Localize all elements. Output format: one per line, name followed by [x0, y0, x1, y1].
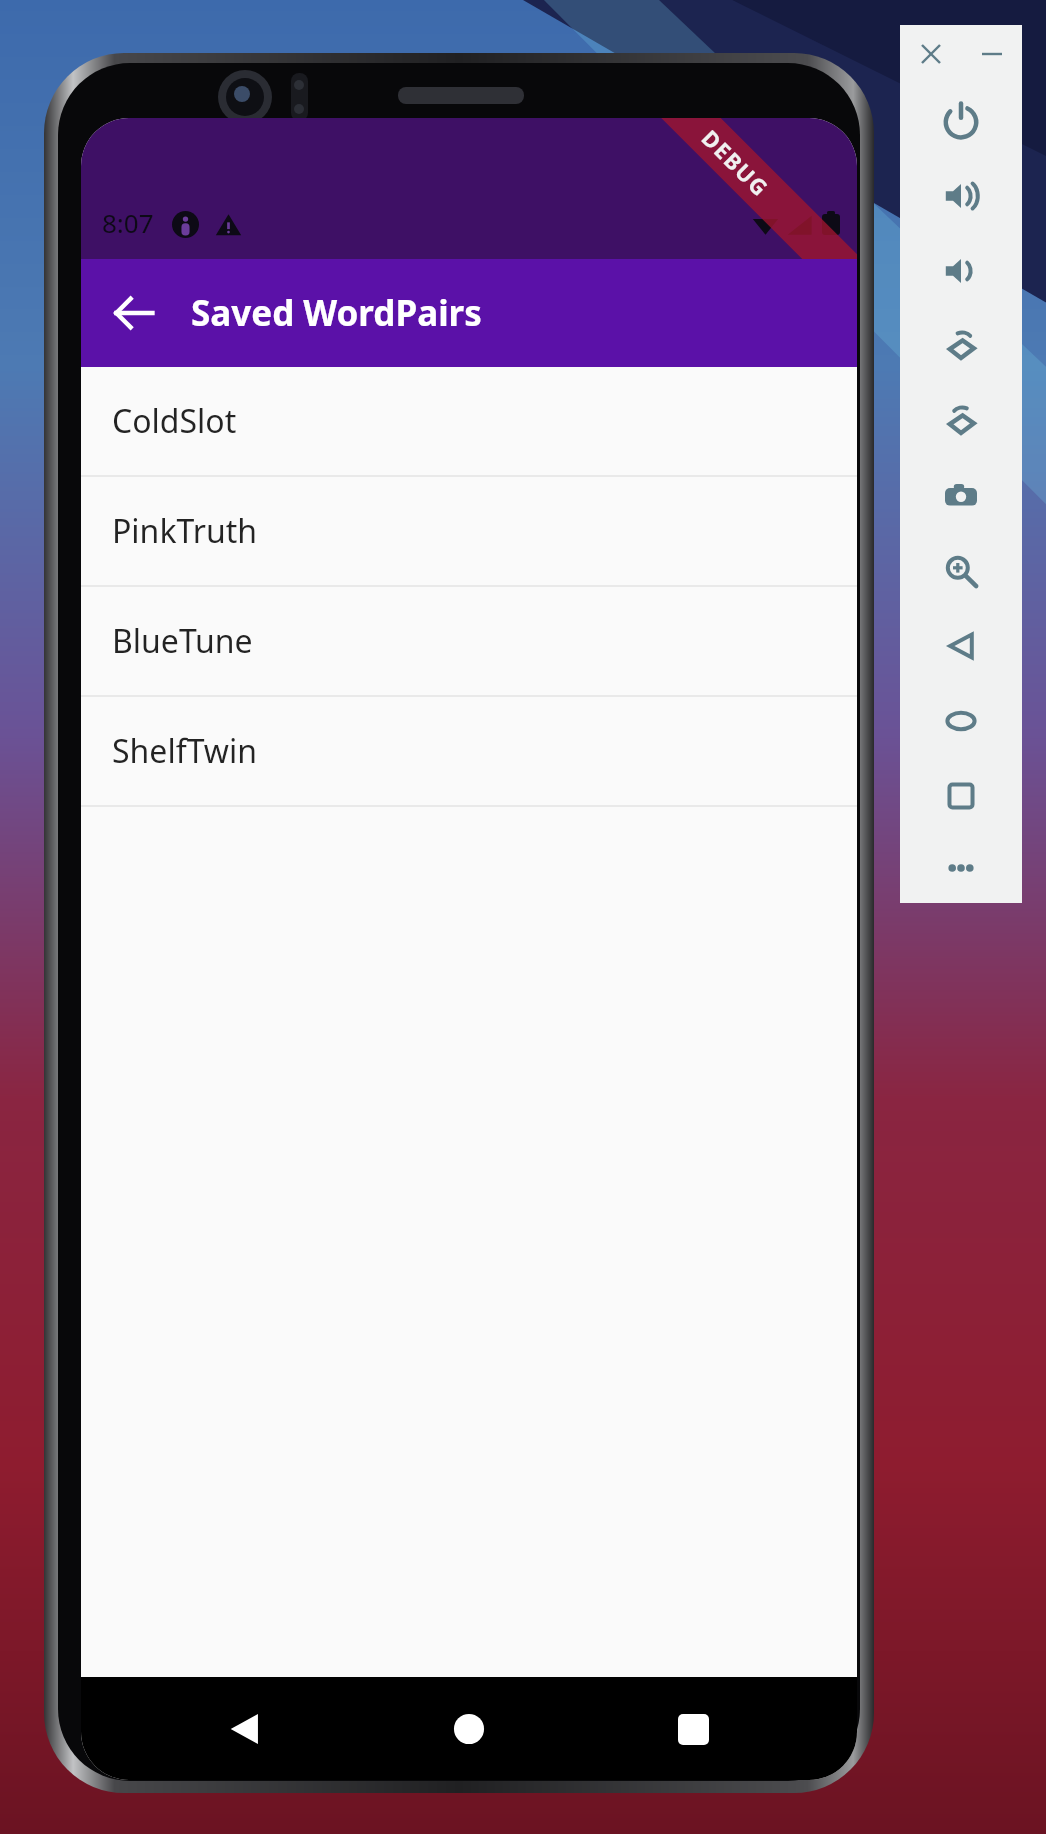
- button[interactable]: Rotate right: [900, 383, 1022, 458]
- button[interactable]: Power: [900, 83, 1022, 158]
- button[interactable]: Home: [900, 683, 1022, 758]
- button[interactable]: Rotate left: [900, 308, 1022, 383]
- button[interactable]: ColdSlot: [81, 367, 857, 477]
- button[interactable]: Screenshot: [900, 458, 1022, 533]
- staticText: 8:07: [102, 205, 154, 240]
- staticText: ShelfTwin: [112, 729, 257, 773]
- button[interactable]: Home: [429, 1689, 509, 1769]
- staticText: DEBUG: [696, 123, 776, 203]
- staticText: Saved WordPairs: [191, 289, 482, 337]
- button[interactable]: Back: [900, 608, 1022, 683]
- button[interactable]: Volume up: [900, 158, 1022, 233]
- button[interactable]: Volume down: [900, 233, 1022, 308]
- button[interactable]: Back: [205, 1689, 285, 1769]
- button[interactable]: Zoom: [900, 533, 1022, 608]
- staticText: PinkTruth: [112, 509, 257, 553]
- button[interactable]: More: [900, 833, 1022, 903]
- staticText: BlueTune: [112, 619, 253, 663]
- button[interactable]: PinkTruth: [81, 477, 857, 587]
- button[interactable]: Recent apps: [653, 1689, 733, 1769]
- button[interactable]: BlueTune: [81, 587, 857, 697]
- button[interactable]: Minimize: [961, 52, 1022, 56]
- button[interactable]: Overview: [900, 758, 1022, 833]
- button[interactable]: Close: [900, 45, 961, 63]
- button[interactable]: Navigate up: [95, 274, 173, 352]
- button[interactable]: ShelfTwin: [81, 697, 857, 807]
- staticText: ColdSlot: [112, 399, 237, 443]
